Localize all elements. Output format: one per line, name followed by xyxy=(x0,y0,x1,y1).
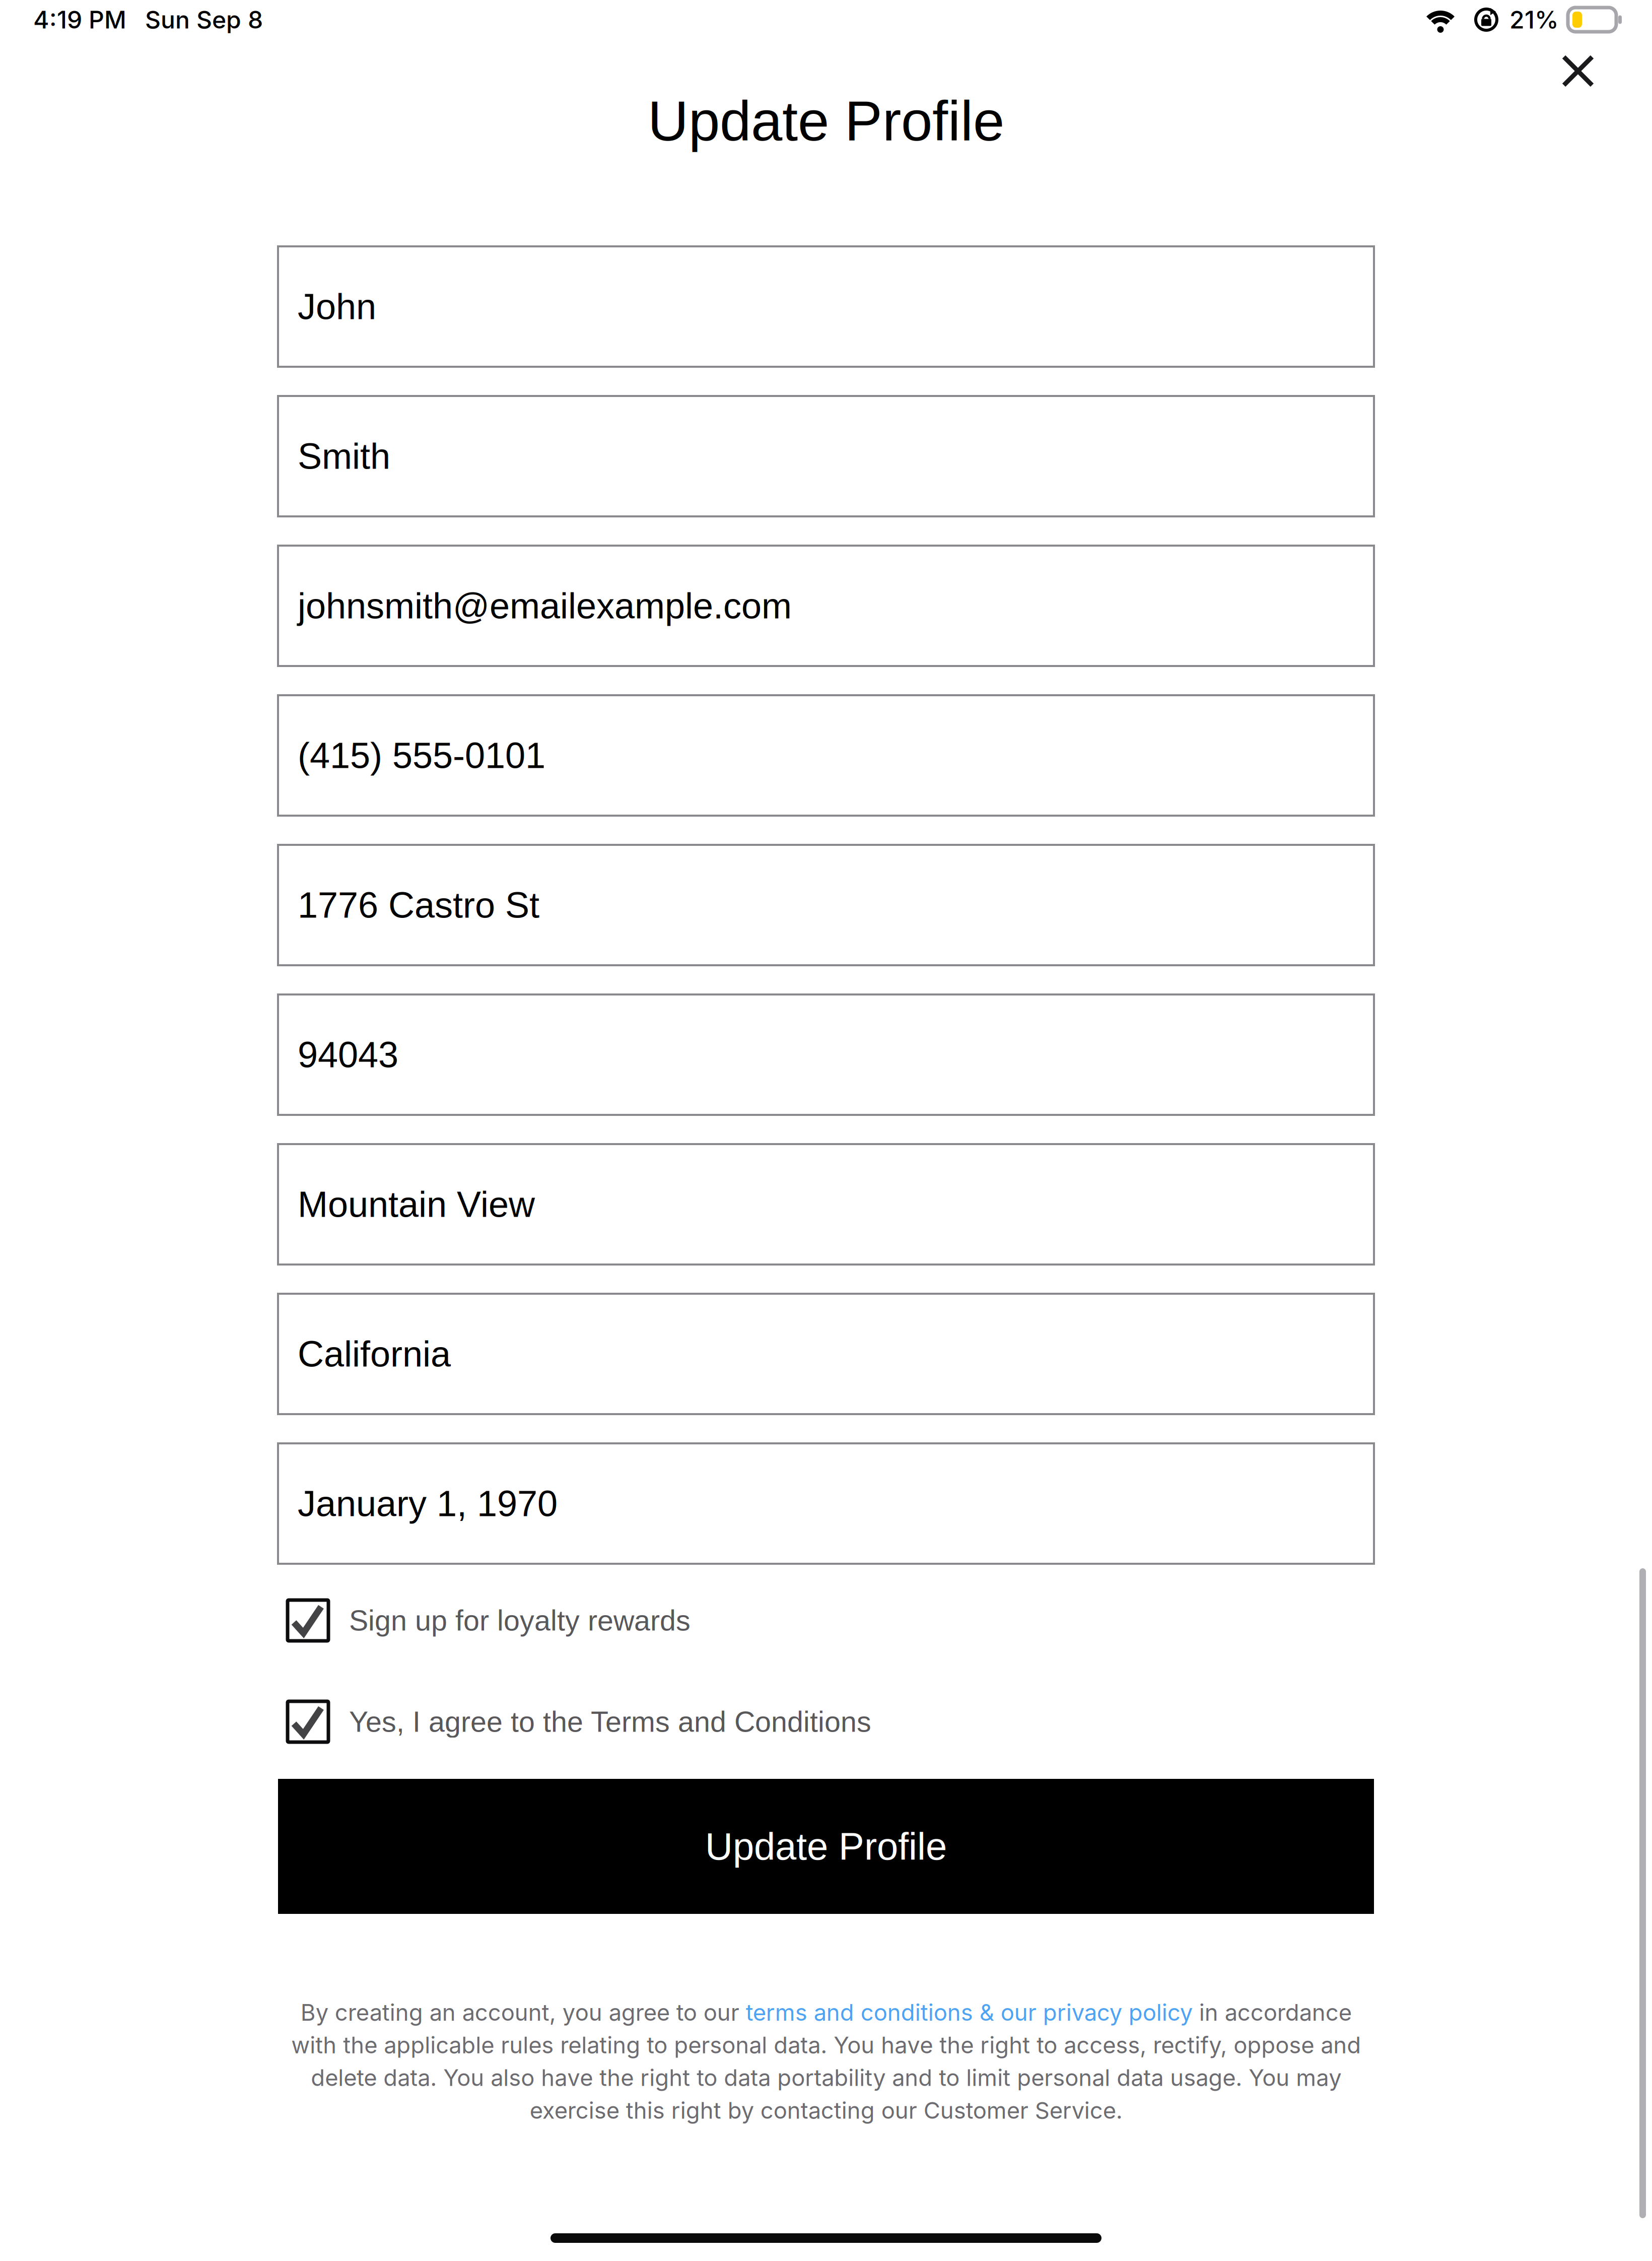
staticText: Yes, I agree to the Terms and Conditions xyxy=(349,1706,871,1738)
staticText: John xyxy=(298,286,376,327)
staticText: California xyxy=(298,1334,451,1374)
staticText: Sun Sep 8 xyxy=(145,5,263,34)
staticText: (415) 555-0101 xyxy=(298,735,545,776)
staticText: 1776 Castro St xyxy=(298,885,539,925)
staticText: Update Profile xyxy=(648,89,1004,152)
staticText: Mountain View xyxy=(298,1184,535,1225)
button[interactable]: Update Profile xyxy=(278,1779,1374,1914)
button[interactable]: Yes, I agree to the Terms and Conditions xyxy=(278,1701,1374,1742)
staticText: Update Profile xyxy=(705,1825,947,1868)
staticText: 94043 xyxy=(298,1034,398,1075)
button[interactable]: Close xyxy=(1538,46,1618,96)
staticText: 4:19 PM xyxy=(33,5,126,34)
staticText: January 1, 1970 xyxy=(298,1483,558,1524)
staticText: Smith xyxy=(298,436,390,476)
staticText: By creating an account, you agree to our… xyxy=(291,1999,1361,2124)
staticText: johnsmith@emailexample.com xyxy=(298,586,792,626)
button[interactable]: Sign up for loyalty rewards xyxy=(278,1600,1374,1641)
staticText: 21% xyxy=(1509,5,1559,34)
staticText: Sign up for loyalty rewards xyxy=(349,1604,691,1637)
